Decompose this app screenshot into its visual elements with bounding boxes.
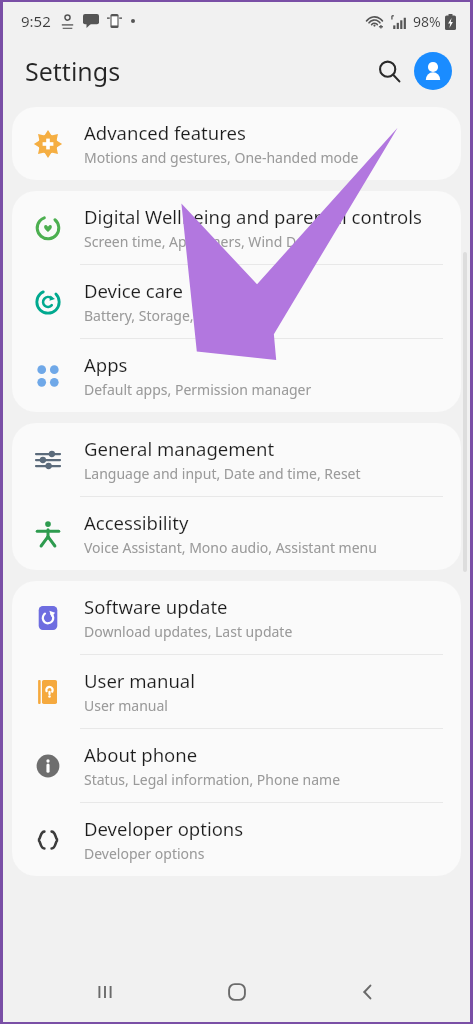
staticText: Screen time, App timers, Wind Down	[84, 232, 324, 251]
staticText: Download updates, Last update	[84, 622, 293, 641]
staticText: Software update	[84, 594, 228, 619]
staticText: User manual	[84, 668, 195, 693]
button[interactable]: Search	[367, 49, 411, 93]
staticText: Voice Assistant, Mono audio, Assistant m…	[84, 538, 377, 557]
staticText: Motions and gestures, One-handed mode	[84, 148, 359, 167]
staticText: User manual	[84, 696, 168, 715]
button[interactable]: Software update	[12, 581, 461, 654]
staticText: Status, Legal information, Phone name	[84, 770, 341, 789]
staticText: Device care	[84, 278, 183, 303]
staticText: General management	[84, 436, 275, 461]
button[interactable]: Device care	[12, 265, 461, 338]
button[interactable]: Apps	[12, 339, 461, 412]
staticText: Battery, Storage, Memory, Se	[84, 306, 275, 325]
button[interactable]: Digital Wellbeing and parental controls	[12, 191, 461, 264]
button[interactable]: Recents	[76, 963, 134, 1021]
staticText: Accessibility	[84, 510, 189, 535]
button[interactable]: User manual	[12, 655, 461, 728]
button[interactable]: Back	[339, 963, 397, 1021]
button[interactable]: Home	[208, 963, 266, 1021]
staticText: Apps	[84, 352, 128, 377]
button[interactable]: Advanced features	[12, 107, 461, 180]
button[interactable]: General management	[12, 423, 461, 496]
staticText: Advanced features	[84, 120, 246, 145]
button[interactable]: Developer options	[12, 803, 461, 876]
staticText: Language and input, Date and time, Reset	[84, 464, 361, 483]
staticText: 98%	[413, 12, 441, 31]
button[interactable]: Accessibility	[12, 497, 461, 570]
staticText: Developer options	[84, 816, 244, 841]
staticText: Default apps, Permission manager	[84, 380, 312, 399]
staticText: Digital Wellbeing and parental controls	[84, 204, 422, 229]
staticText: Developer options	[84, 844, 205, 863]
staticText: Settings	[25, 54, 121, 88]
button[interactable]: Account	[414, 52, 452, 90]
staticText: About phone	[84, 742, 198, 767]
staticText: 9:52	[21, 11, 51, 31]
button[interactable]: About phone	[12, 729, 461, 802]
